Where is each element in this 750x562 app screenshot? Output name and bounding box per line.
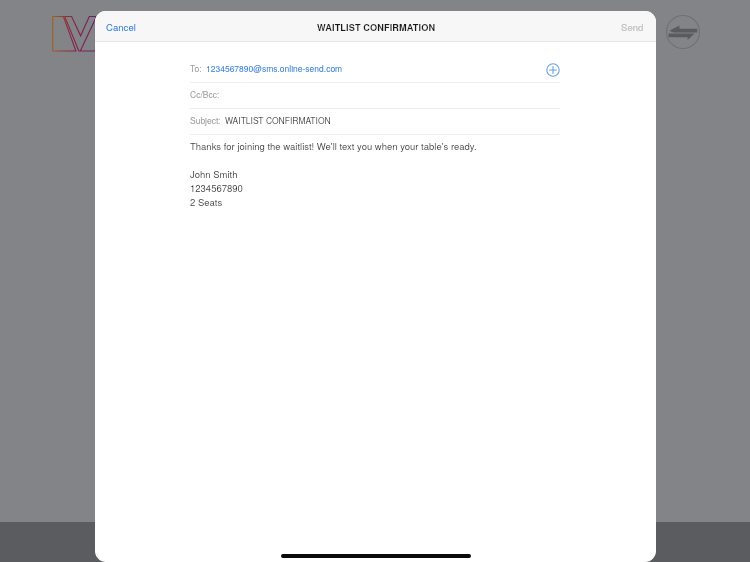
- staticText: Subject:: [190, 114, 221, 126]
- staticText: 1234567890: [190, 181, 243, 195]
- button[interactable]: Transfer between accounts: [666, 15, 700, 49]
- button[interactable]: Add recipient: [544, 61, 562, 79]
- staticText: WAITLIST CONFIRMATION: [225, 114, 331, 126]
- button[interactable]: Cc/Bcc:: [190, 83, 560, 109]
- staticText: Thanks for joining the waitlist! We'll t…: [190, 139, 477, 153]
- staticText: WAITLIST CONFIRMATION: [317, 21, 436, 34]
- button[interactable]: Subject:: [190, 109, 560, 135]
- staticText: Cc/Bcc:: [190, 88, 220, 100]
- button[interactable]: Send: [613, 14, 656, 40]
- button[interactable]: To:: [190, 57, 560, 83]
- staticText: John Smith: [190, 167, 238, 181]
- staticText: 2 Seats: [190, 195, 223, 209]
- staticText: To:: [190, 62, 202, 74]
- staticText: 1234567890@sms.online-send.com: [206, 62, 343, 74]
- button[interactable]: Cancel: [95, 14, 144, 40]
